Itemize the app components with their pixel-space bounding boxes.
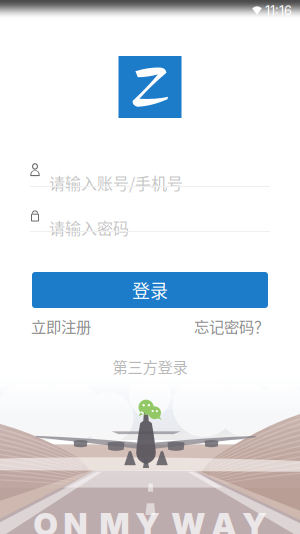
staticText: 第三方登录 [112,355,187,377]
button[interactable]: 登录 [32,272,268,308]
button[interactable]: 忘记密码？ [194,312,269,340]
button[interactable]: 立即注册 [31,312,91,340]
staticText: 立即注册 [31,315,91,337]
staticText: 请输入账号/手机号 [49,171,183,194]
staticText: 请输入密码 [49,216,129,239]
staticText: 忘记密码？ [194,315,269,337]
button[interactable]: 微信登录 [137,399,162,420]
staticText: 11:16 [265,3,292,18]
staticText: O N M Y W A Y [33,505,266,534]
staticText: 登录 [132,277,168,303]
